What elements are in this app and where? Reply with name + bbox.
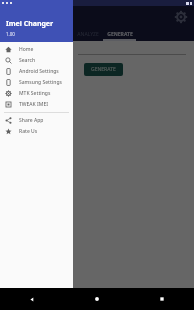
staticText: 1.00: [6, 31, 15, 37]
staticText: Rate Us: [19, 128, 38, 135]
button[interactable]: Home: [64, 288, 129, 310]
button[interactable]: Back: [0, 288, 64, 310]
staticText: GENERATE: [107, 31, 133, 38]
staticText: GENERATE: [91, 66, 116, 73]
staticText: ANALYZE: [77, 31, 99, 38]
button[interactable]: Home: [0, 44, 73, 55]
button[interactable]: GENERATE: [103, 28, 136, 41]
staticText: Android Settings: [19, 68, 59, 75]
staticText: Samsung Settings: [19, 79, 62, 86]
button[interactable]: Search: [0, 55, 73, 66]
staticText: Share App: [19, 117, 44, 124]
staticText: Home: [19, 46, 34, 53]
staticText: Search: [19, 57, 36, 64]
button[interactable]: ANALYZE: [73, 28, 103, 41]
button[interactable]: Settings: [174, 10, 188, 24]
button[interactable]: GENERATE: [84, 63, 123, 76]
button[interactable]: Recents: [129, 288, 194, 310]
button[interactable]: MTK Settings: [0, 88, 73, 99]
staticText: TWEAK IMEI: [19, 101, 48, 108]
staticText: Imei Changer: [6, 19, 54, 29]
button[interactable]: Android Settings: [0, 66, 73, 77]
staticText: MTK Settings: [19, 90, 51, 97]
button[interactable]: Samsung Settings: [0, 77, 73, 88]
button[interactable]: TWEAK IMEI: [0, 99, 73, 110]
button[interactable]: Rate Us: [0, 126, 73, 137]
button[interactable]: Share App: [0, 115, 73, 126]
